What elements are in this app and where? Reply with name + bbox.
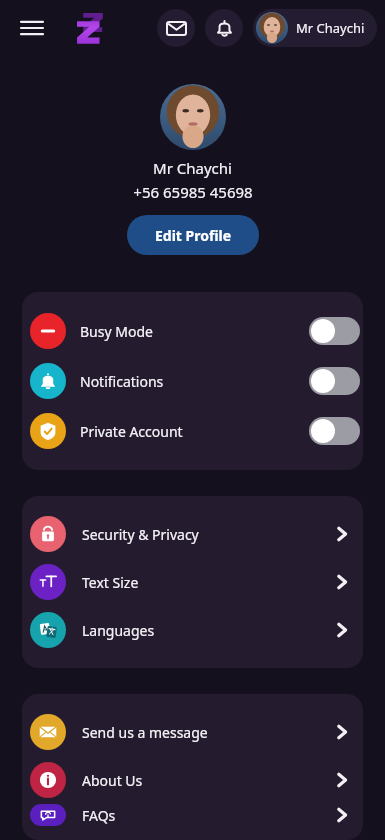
button[interactable]: Languages <box>22 606 363 654</box>
staticText: FAQs <box>82 806 116 825</box>
button[interactable]: Menu <box>12 8 52 48</box>
staticText: Busy Mode <box>80 322 153 341</box>
staticText: Send us a message <box>82 723 208 742</box>
staticText: Edit Profile <box>155 226 232 245</box>
staticText: Private Account <box>80 422 183 441</box>
button[interactable]: Private Account toggle <box>309 417 360 445</box>
button[interactable]: Logo <box>68 6 112 50</box>
button[interactable]: Mr Chaychi <box>253 9 377 47</box>
button[interactable]: Send us a message <box>22 708 363 756</box>
button[interactable]: Text Size <box>22 558 363 606</box>
staticText: Mr Chaychi <box>153 158 232 178</box>
staticText: Text Size <box>82 573 139 592</box>
button[interactable]: Notifications <box>22 356 363 406</box>
button[interactable]: Security & Privacy <box>22 510 363 558</box>
staticText: +56 65985 45698 <box>133 182 253 202</box>
staticText: About Us <box>82 771 143 790</box>
staticText: Notifications <box>80 372 164 391</box>
staticText: Security & Privacy <box>82 525 199 544</box>
staticText: Languages <box>82 621 155 640</box>
button[interactable]: FAQs <box>22 804 363 826</box>
button[interactable]: Notifications <box>205 9 243 47</box>
staticText: Mr Chaychi <box>296 19 365 37</box>
button[interactable]: About Us <box>22 756 363 804</box>
button[interactable]: Notifications toggle <box>309 367 360 395</box>
button[interactable]: Edit Profile <box>127 215 259 255</box>
button[interactable]: Busy Mode toggle <box>309 317 360 345</box>
button[interactable]: Private Account <box>22 406 363 456</box>
button[interactable]: Messages <box>157 9 195 47</box>
button[interactable]: Busy Mode <box>22 306 363 356</box>
